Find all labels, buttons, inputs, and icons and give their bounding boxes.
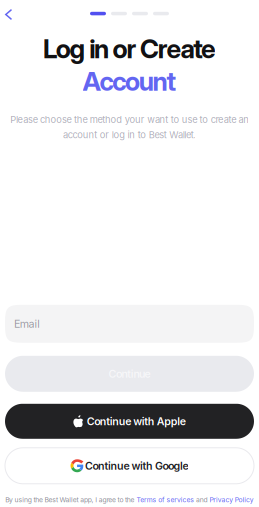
staticText: By using the Best Wallet app, I agree to… bbox=[5, 496, 136, 504]
button[interactable]: Continue with Google bbox=[5, 448, 254, 484]
staticText: Continue with Google bbox=[85, 459, 188, 472]
staticText: Account bbox=[83, 65, 176, 97]
button[interactable]: Continue bbox=[5, 356, 254, 392]
staticText: Please choose the method your want to us… bbox=[10, 114, 249, 140]
staticText: and bbox=[194, 496, 209, 504]
staticText: Privacy Policy bbox=[209, 496, 254, 504]
button[interactable]: Back bbox=[0, 0, 21, 21]
button[interactable]: Terms of services bbox=[136, 496, 194, 504]
button[interactable]: Privacy Policy bbox=[209, 496, 254, 504]
staticText: Email bbox=[14, 317, 40, 330]
button[interactable]: Email bbox=[5, 305, 254, 343]
staticText: Terms of services bbox=[136, 496, 194, 504]
staticText: Continue bbox=[108, 367, 151, 380]
staticText: Continue with Apple bbox=[87, 415, 186, 428]
button[interactable]: Continue with Apple bbox=[5, 404, 254, 439]
staticText: Log in or Create bbox=[43, 33, 216, 64]
